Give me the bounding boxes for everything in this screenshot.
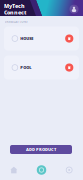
staticText: ADD PRODUCT bbox=[26, 147, 56, 152]
button[interactable]: Settings bbox=[55, 160, 83, 180]
button[interactable]: POOL bbox=[4, 55, 79, 79]
staticText: HOUSE bbox=[20, 36, 33, 41]
button[interactable]: ADD PRODUCT bbox=[10, 145, 72, 154]
button[interactable]: Profile bbox=[69, 4, 79, 14]
button[interactable]: Home bbox=[0, 160, 28, 180]
button[interactable]: HOUSE bbox=[4, 26, 79, 50]
staticText: MyTech bbox=[4, 2, 25, 10]
button[interactable]: Scan bbox=[28, 160, 55, 180]
button[interactable]: Delete HOUSE bbox=[64, 34, 74, 43]
staticText: INSTALLATIONS bbox=[5, 20, 27, 23]
button[interactable]: Delete POOL bbox=[64, 63, 74, 72]
staticText: Connect bbox=[4, 9, 26, 16]
staticText: POOL bbox=[20, 65, 31, 70]
